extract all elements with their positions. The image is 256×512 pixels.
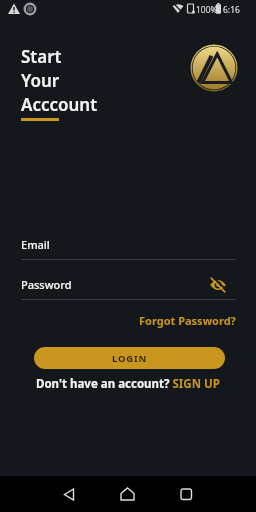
staticText: Start Your Acccount [21,45,98,116]
staticText: Forgot Password? [139,313,236,328]
staticText: 100% [196,4,218,16]
button[interactable] [113,484,143,506]
button[interactable] [209,277,227,293]
button[interactable] [54,484,84,506]
button[interactable] [172,484,202,506]
staticText: Password [21,277,72,292]
staticText: Don't have an account? SIGN UP [36,376,220,392]
button[interactable]: Don't have an account? SIGN UP [0,376,256,392]
button[interactable]: Email [21,234,236,260]
staticText: Email [21,237,50,252]
staticText: LOGIN [112,352,147,365]
button[interactable]: Forgot Password? [0,313,236,328]
button[interactable]: LOGIN [34,347,225,369]
staticText: 6:16 [223,4,240,16]
button[interactable]: Password [21,274,236,300]
